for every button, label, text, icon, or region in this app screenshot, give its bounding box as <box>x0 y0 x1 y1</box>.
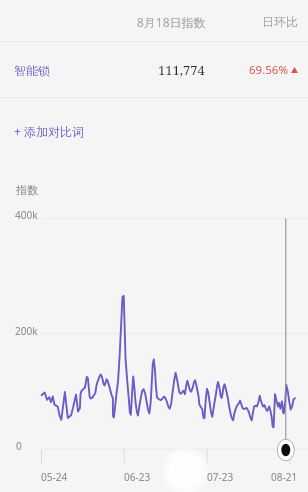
button[interactable]: 智能锁 <box>0 42 308 98</box>
staticText: 智能锁 <box>14 63 50 78</box>
staticText: 日环比 <box>262 14 298 29</box>
staticText: 07-23 <box>207 470 234 484</box>
staticText: 0 <box>16 439 22 453</box>
staticText: 200k <box>15 324 38 338</box>
staticText: 指数 <box>16 183 38 197</box>
staticText: 111,774 <box>158 61 205 79</box>
staticText: 8月18日指数 <box>137 14 206 30</box>
staticText: 400k <box>15 208 38 222</box>
staticText: 08-21 <box>271 470 298 484</box>
staticText: 05-24 <box>41 470 68 484</box>
button[interactable]: + 添加对比词 <box>0 98 308 164</box>
staticText: + 添加对比词 <box>14 123 84 139</box>
staticText: 69.56% <box>249 62 288 78</box>
staticText: 06-23 <box>124 470 151 484</box>
